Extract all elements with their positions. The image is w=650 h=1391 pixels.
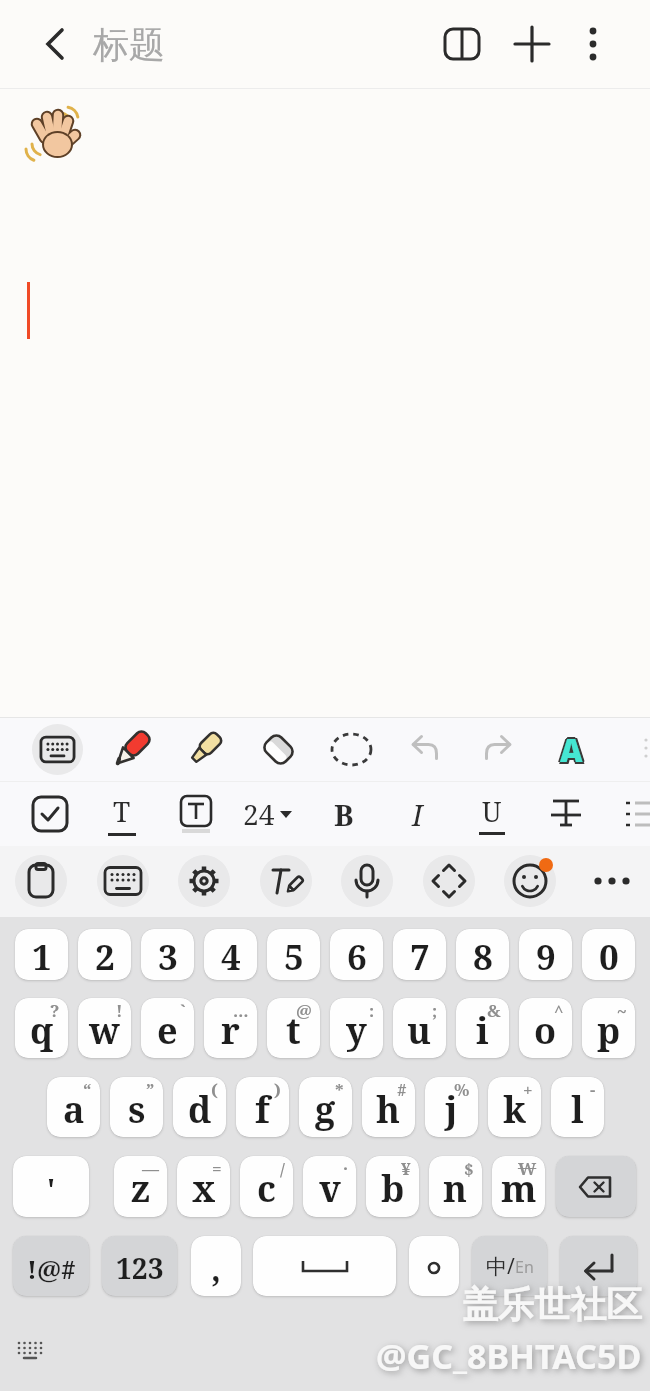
button[interactable] [106,724,157,775]
staticText: A [562,729,585,771]
staticText: ¥ [401,1157,411,1180]
button[interactable]: ; [393,998,446,1058]
button[interactable] [622,789,650,839]
staticText: q [30,1006,54,1055]
button[interactable]: ! [78,998,131,1058]
button[interactable]: ^ [519,998,572,1058]
button[interactable] [341,855,393,907]
button[interactable]: U [467,789,517,839]
button[interactable]: ) [236,1077,289,1137]
button[interactable]: ' [13,1156,89,1217]
button[interactable] [556,1156,636,1217]
button[interactable] [16,1340,46,1362]
staticText: ` [180,999,186,1022]
staticText: a [63,1085,85,1134]
staticText: 5 [284,933,304,980]
button[interactable] [507,19,557,69]
button[interactable] [179,724,230,775]
button[interactable]: B [319,789,369,839]
button[interactable] [97,855,149,907]
button[interactable]: 9 [519,929,572,980]
staticText: m [501,1164,537,1213]
button[interactable]: ` [141,998,194,1058]
button[interactable]: 24 [233,789,303,839]
staticText: y [346,1006,367,1055]
button[interactable]: - [551,1077,604,1137]
button[interactable]: & [456,998,509,1058]
staticText: A [562,731,585,773]
button[interactable] [178,855,230,907]
button[interactable]: 1 [15,929,68,980]
button[interactable]: , [191,1236,241,1296]
button[interactable]: ₩ [492,1156,545,1217]
button[interactable] [473,724,524,775]
button[interactable]: 6 [330,929,383,980]
button[interactable] [253,724,304,775]
staticText: ₩ [518,1157,537,1180]
button[interactable] [409,1236,459,1296]
button[interactable] [326,724,377,775]
button[interactable]: ( [173,1077,226,1137]
staticText: A [562,728,585,770]
staticText: # [397,1078,407,1101]
button[interactable] [437,19,487,69]
button[interactable] [171,789,221,839]
button[interactable] [541,789,591,839]
button[interactable] [15,855,67,907]
button[interactable] [25,789,75,839]
button[interactable]: I [392,789,442,839]
staticText: ! [116,999,123,1022]
button[interactable]: !@# [13,1236,89,1296]
staticText: U [482,793,502,830]
button[interactable]: 2 [78,929,131,980]
staticText: t [286,1006,301,1055]
staticText: : [369,999,375,1022]
button[interactable]: + [488,1077,541,1137]
button[interactable]: ” [110,1077,163,1137]
button[interactable]: ¥ [366,1156,419,1217]
button[interactable]: 3 [141,929,194,980]
button[interactable] [253,1236,396,1296]
button[interactable]: * [299,1077,352,1137]
button[interactable]: = [177,1156,230,1217]
button[interactable]: # [362,1077,415,1137]
staticText: 2 [95,933,115,980]
button[interactable] [586,855,638,907]
staticText: 123 [116,1249,164,1287]
button[interactable]: A [546,724,597,775]
button[interactable]: / [240,1156,293,1217]
button[interactable]: 8 [456,929,509,980]
button[interactable]: ~ [582,998,635,1058]
button[interactable]: 123 [102,1236,177,1296]
button[interactable]: @ [267,998,320,1058]
button[interactable]: $ [429,1156,482,1217]
button[interactable]: 4 [204,929,257,980]
button[interactable] [568,19,618,69]
button[interactable]: 5 [267,929,320,980]
staticText: A [558,729,581,771]
button[interactable] [504,855,556,907]
button[interactable] [30,19,80,69]
button[interactable]: … [204,998,257,1058]
button[interactable]: % [425,1077,478,1137]
staticText: g [315,1085,336,1134]
button[interactable]: 0 [582,929,635,980]
button[interactable]: 中/ [472,1236,547,1296]
staticText: l [571,1085,584,1134]
button[interactable] [32,724,83,775]
button[interactable] [560,1236,637,1296]
staticText: A [560,727,583,769]
staticText: I [412,795,423,834]
staticText: 盖乐世社区 [462,1282,642,1327]
button[interactable]: T [97,789,147,839]
button[interactable] [260,855,312,907]
button[interactable]: : [330,998,383,1058]
button[interactable]: “ [47,1077,100,1137]
button[interactable] [423,855,475,907]
button[interactable]: 7 [393,929,446,980]
button[interactable]: ? [15,998,68,1058]
button[interactable]: — [114,1156,167,1217]
staticText: ; [432,999,438,1022]
button[interactable]: · [303,1156,356,1217]
button[interactable] [399,724,450,775]
